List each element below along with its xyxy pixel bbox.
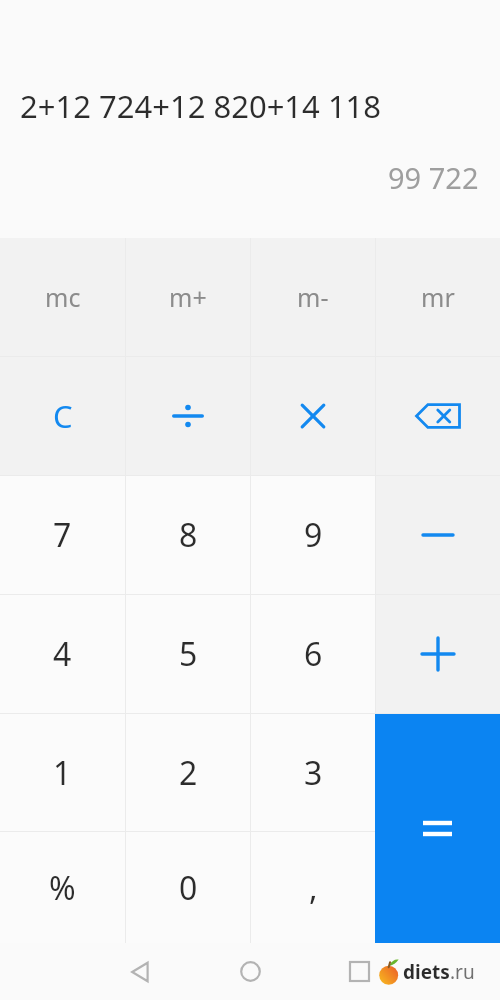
- staticText: 6: [304, 632, 323, 676]
- staticText: 9: [304, 513, 323, 557]
- staticText: ,: [309, 866, 318, 910]
- button[interactable]: %: [0, 832, 125, 943]
- staticText: 1: [53, 751, 72, 795]
- staticText: C: [53, 395, 73, 437]
- staticText: 0: [179, 866, 198, 910]
- staticText: diets: [403, 959, 450, 985]
- button[interactable]: Back: [122, 943, 160, 1000]
- staticText: 3: [304, 751, 323, 795]
- staticText: 4: [53, 632, 72, 676]
- button[interactable]: 2: [126, 714, 250, 831]
- button[interactable]: 4: [0, 595, 125, 713]
- button[interactable]: 8: [126, 476, 250, 594]
- button[interactable]: 1: [0, 714, 125, 831]
- staticText: 5: [179, 632, 198, 676]
- button[interactable]: Plus: [376, 595, 500, 713]
- staticText: %: [49, 866, 76, 910]
- button[interactable]: Minus: [376, 476, 500, 594]
- button[interactable]: Home: [231, 943, 269, 1000]
- button[interactable]: m+: [126, 238, 250, 356]
- button[interactable]: 7: [0, 476, 125, 594]
- button[interactable]: 6: [251, 595, 375, 713]
- staticText: 2+12 724+12 820+14 118: [20, 85, 382, 127]
- staticText: mr: [421, 280, 455, 314]
- button[interactable]: Equals: [375, 714, 500, 943]
- button[interactable]: Divide: [126, 357, 250, 475]
- button[interactable]: 3: [251, 714, 375, 831]
- button[interactable]: m-: [251, 238, 375, 356]
- button[interactable]: ,: [251, 832, 375, 943]
- staticText: 2: [179, 751, 198, 795]
- staticText: mc: [45, 280, 81, 314]
- button[interactable]: Backspace: [376, 357, 500, 475]
- button[interactable]: 0: [126, 832, 250, 943]
- button[interactable]: Multiply: [251, 357, 375, 475]
- button[interactable]: 5: [126, 595, 250, 713]
- staticText: m-: [297, 280, 329, 314]
- staticText: 99 722: [388, 158, 479, 197]
- staticText: .ru: [450, 959, 475, 985]
- button[interactable]: mr: [376, 238, 500, 356]
- button[interactable]: Clear: [0, 357, 125, 475]
- staticText: 8: [179, 513, 198, 557]
- staticText: 7: [53, 513, 72, 557]
- button[interactable]: 9: [251, 476, 375, 594]
- staticText: m+: [169, 280, 207, 314]
- button[interactable]: Recents: [340, 943, 378, 1000]
- button[interactable]: mc: [0, 238, 125, 356]
